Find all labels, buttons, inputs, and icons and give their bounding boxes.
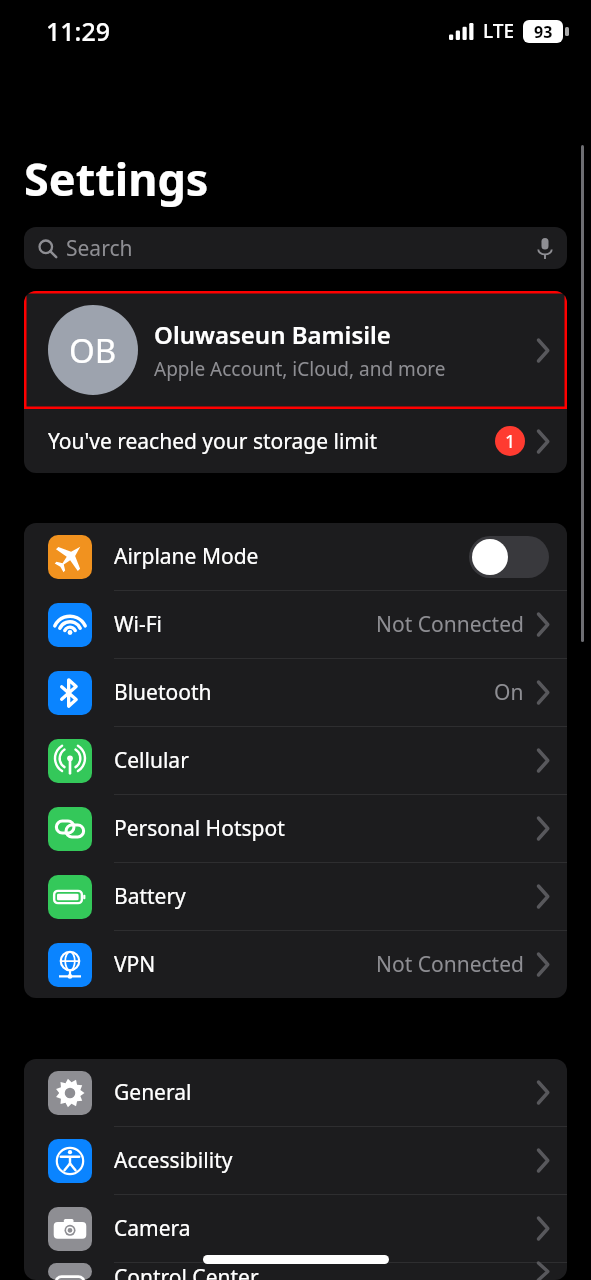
other: Voice search (537, 238, 553, 259)
button[interactable]: Camera (24, 1195, 567, 1262)
staticText: 93 (534, 21, 553, 43)
button[interactable]: Cellular (24, 727, 567, 794)
button[interactable]: Airplane Mode toggle (469, 536, 549, 578)
staticText: VPN (114, 950, 156, 979)
button[interactable]: Personal Hotspot (24, 795, 567, 862)
staticText: Not Connected (376, 950, 524, 979)
button[interactable]: Bluetooth (24, 659, 567, 726)
staticText: Accessibility (114, 1146, 233, 1175)
button[interactable]: Control Center (24, 1263, 567, 1280)
button[interactable]: Battery (24, 863, 567, 930)
staticText: You've reached your storage limit (48, 427, 377, 456)
button[interactable]: Search (24, 227, 567, 269)
staticText: LTE (483, 18, 515, 44)
staticText: On (494, 678, 524, 707)
staticText: 11:29 (46, 14, 111, 48)
button[interactable]: OB (24, 291, 567, 409)
staticText: Search (66, 234, 133, 263)
staticText: Settings (24, 148, 209, 209)
button[interactable]: Accessibility (24, 1127, 567, 1194)
staticText: Bluetooth (114, 678, 212, 707)
button[interactable]: Airplane Mode (24, 523, 567, 590)
staticText: Not Connected (376, 610, 524, 639)
button[interactable]: Wi-Fi (24, 591, 567, 658)
staticText: Oluwaseun Bamisile (154, 318, 391, 351)
staticText: Battery (114, 882, 186, 911)
staticText: Control Center (114, 1263, 259, 1280)
staticText: Wi-Fi (114, 610, 163, 639)
staticText: OB (69, 328, 117, 373)
staticText: Camera (114, 1214, 191, 1243)
button[interactable]: VPN (24, 931, 567, 998)
staticText: General (114, 1078, 192, 1107)
staticText: Personal Hotspot (114, 814, 285, 843)
button[interactable]: You've reached your storage limit (24, 409, 567, 473)
staticText: 1 (505, 429, 516, 454)
staticText: Apple Account, iCloud, and more (154, 356, 446, 382)
staticText: Airplane Mode (114, 542, 259, 571)
staticText: Cellular (114, 746, 189, 775)
button[interactable]: General (24, 1059, 567, 1126)
